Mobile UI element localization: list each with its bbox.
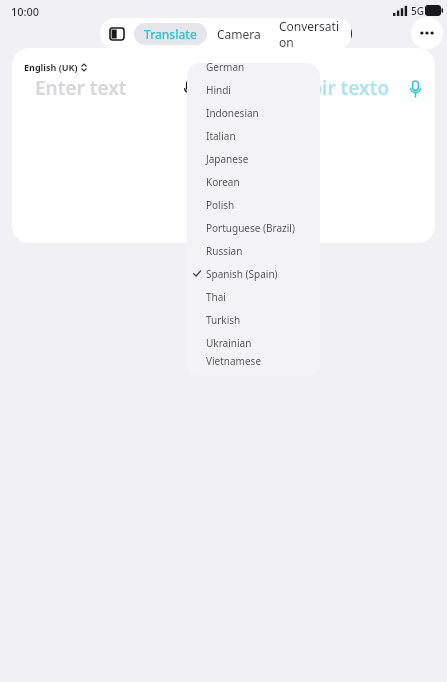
staticText: Ukrainian <box>206 336 252 350</box>
button[interactable]: Enter text <box>35 75 127 101</box>
button[interactable]: Thai <box>187 285 320 308</box>
staticText: Enter text <box>35 75 127 101</box>
button[interactable]: German <box>187 63 320 78</box>
staticText: Polish <box>206 198 235 212</box>
staticText: Escribir texto <box>267 75 390 101</box>
button[interactable]: Italian <box>187 124 320 147</box>
staticText: Turkish <box>206 313 241 327</box>
button[interactable]: More options <box>411 17 443 49</box>
staticText: Thai <box>206 290 226 304</box>
staticText: Korean <box>206 175 240 189</box>
button[interactable]: Korean <box>187 170 320 193</box>
staticText: German <box>206 63 245 74</box>
staticText: Indonesian <box>206 106 259 120</box>
staticText: Russian <box>206 244 243 258</box>
button[interactable]: Vietnamese <box>187 354 320 368</box>
button[interactable]: Portuguese (Brazil) <box>187 216 320 239</box>
button[interactable]: Sidebar <box>100 18 134 49</box>
staticText: Translate <box>144 26 197 42</box>
button[interactable]: Turkish <box>187 308 320 331</box>
button[interactable]: Russian <box>187 239 320 262</box>
staticText: Camera <box>217 26 261 42</box>
staticText: Italian <box>206 129 236 143</box>
button[interactable]: Conversation <box>271 18 352 49</box>
button[interactable]: Translate <box>134 23 207 45</box>
staticText: Hindi <box>206 83 231 97</box>
button[interactable]: Polish <box>187 193 320 216</box>
button[interactable]: Ukrainian <box>187 331 320 354</box>
staticText: Vietnamese <box>206 354 262 368</box>
button[interactable]: Voice output <box>404 78 426 100</box>
button[interactable]: Indonesian <box>187 101 320 124</box>
staticText: 5G <box>411 4 424 18</box>
button[interactable]: Voice input <box>178 78 200 100</box>
button[interactable]: Japanese <box>187 147 320 170</box>
staticText: 10:00 <box>11 4 40 19</box>
staticText: Portuguese (Brazil) <box>206 221 295 235</box>
staticText: English (UK) <box>24 61 78 73</box>
button[interactable]: Hindi <box>187 78 320 101</box>
staticText: Japanese <box>206 152 249 166</box>
staticText: Conversation <box>279 18 344 49</box>
button[interactable]: Spanish (Spain) <box>187 262 320 285</box>
button[interactable]: Camera <box>207 18 271 49</box>
staticText: Spanish (Spain) <box>206 267 278 281</box>
